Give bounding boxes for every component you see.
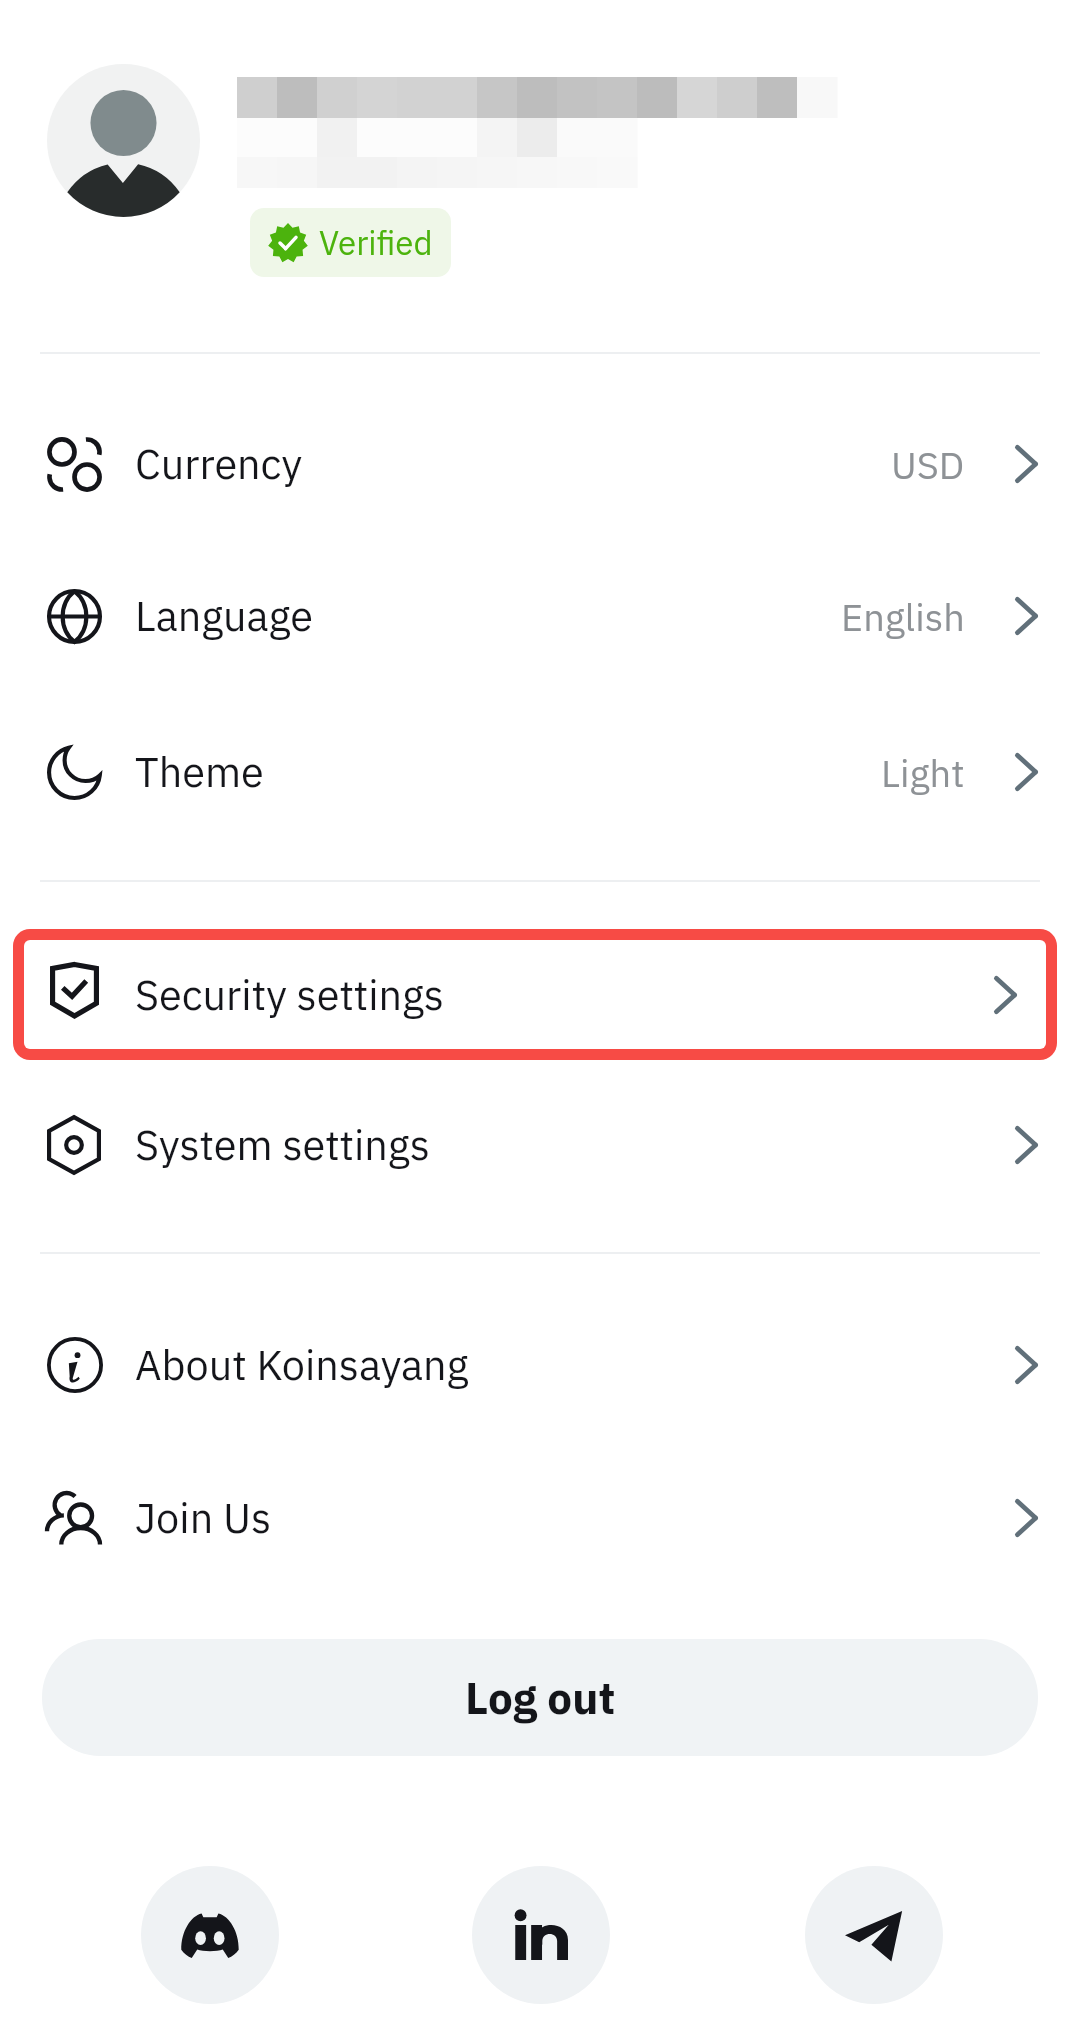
button[interactable]: Verified — [250, 208, 451, 277]
staticText: About Koinsayang — [135, 1338, 469, 1392]
button[interactable]: Currency — [0, 388, 1080, 540]
staticText: Security settings — [135, 968, 445, 1022]
button[interactable]: Log out — [42, 1639, 1038, 1756]
button[interactable]: About Koinsayang — [0, 1289, 1080, 1441]
staticText: Join Us — [135, 1491, 272, 1545]
button[interactable]: Telegram — [805, 1866, 943, 2004]
button[interactable]: Discord — [141, 1866, 279, 2004]
button[interactable]: Theme — [0, 696, 1080, 848]
staticText: Currency — [135, 437, 303, 491]
staticText: System settings — [135, 1118, 430, 1172]
staticText: Language — [135, 589, 313, 643]
button[interactable]: Join Us — [0, 1442, 1080, 1594]
staticText: Verified — [319, 221, 433, 264]
staticText: Light — [881, 748, 965, 797]
button[interactable]: System settings — [0, 1069, 1080, 1221]
staticText: English — [841, 592, 965, 641]
staticText: Log out — [465, 1669, 616, 1726]
button[interactable]: LinkedIn — [472, 1866, 610, 2004]
button[interactable]: Security settings — [24, 940, 1046, 1049]
staticText: Theme — [135, 745, 264, 799]
button[interactable]: Language — [0, 540, 1080, 692]
staticText: USD — [891, 440, 965, 489]
